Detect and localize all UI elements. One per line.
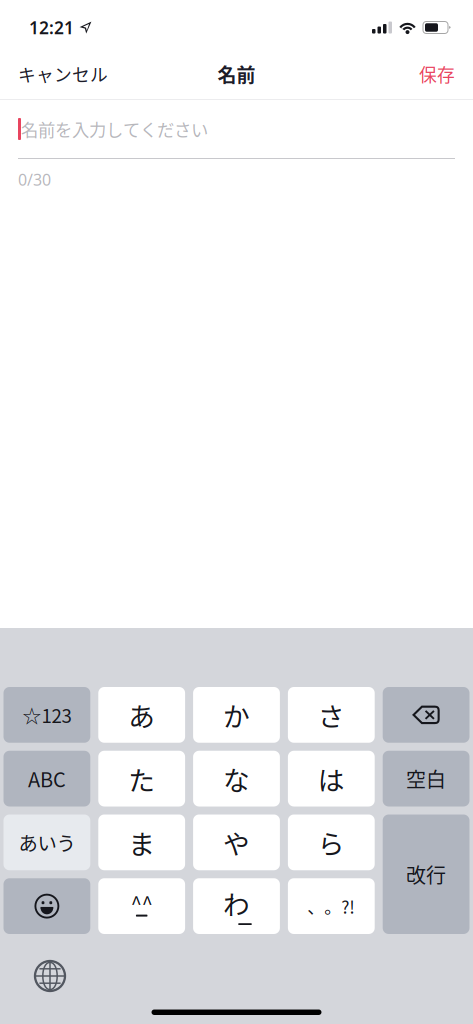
button[interactable]: キャンセル xyxy=(18,64,108,90)
button[interactable]: 空白 xyxy=(383,751,469,807)
button[interactable]: ^^ xyxy=(98,878,185,934)
staticText: あいう xyxy=(18,828,75,856)
button[interactable]: 保存 xyxy=(419,64,455,90)
staticText: な xyxy=(223,759,250,798)
staticText: ま xyxy=(128,823,155,862)
staticText: か xyxy=(223,696,250,734)
staticText: キャンセル xyxy=(18,61,108,87)
button[interactable]: さ xyxy=(288,687,375,743)
staticText: 空白 xyxy=(406,764,446,793)
button[interactable]: ま xyxy=(98,814,185,870)
button[interactable]: 改行 xyxy=(383,814,469,934)
staticText: た xyxy=(128,759,155,798)
staticText: ^^ xyxy=(131,888,153,917)
staticText: ら xyxy=(318,823,345,862)
staticText: ABC xyxy=(28,764,66,793)
button[interactable]: あ xyxy=(98,687,185,743)
button[interactable]: Emoji xyxy=(3,878,90,934)
staticText: や xyxy=(223,823,250,862)
button[interactable]: か xyxy=(193,687,280,743)
staticText: 名前 xyxy=(217,60,255,88)
button[interactable]: わ xyxy=(193,878,280,934)
button[interactable]: ABC xyxy=(3,751,90,807)
button[interactable]: 、。?! xyxy=(288,878,375,934)
button[interactable]: ら xyxy=(288,814,375,870)
button[interactable]: は xyxy=(288,751,375,807)
button[interactable]: Switch keyboard xyxy=(20,952,80,1000)
button[interactable]: ☆123 xyxy=(3,687,90,743)
button[interactable]: た xyxy=(98,751,185,807)
button[interactable]: あいう xyxy=(3,814,90,870)
staticText: 名前を入力してください xyxy=(21,116,208,142)
staticText: 12:21 xyxy=(29,16,74,39)
staticText: あ xyxy=(128,696,155,734)
staticText: 0/30 xyxy=(18,169,51,190)
button[interactable]: や xyxy=(193,814,280,870)
staticText: さ xyxy=(318,696,345,734)
staticText: わ xyxy=(223,884,250,922)
staticText: 改行 xyxy=(406,860,446,889)
staticText: 、。?! xyxy=(307,894,355,919)
staticText: ☆123 xyxy=(22,701,71,728)
staticText: 保存 xyxy=(419,61,455,87)
button[interactable]: Delete xyxy=(383,687,469,743)
button[interactable]: な xyxy=(193,751,280,807)
staticText: は xyxy=(318,759,345,798)
